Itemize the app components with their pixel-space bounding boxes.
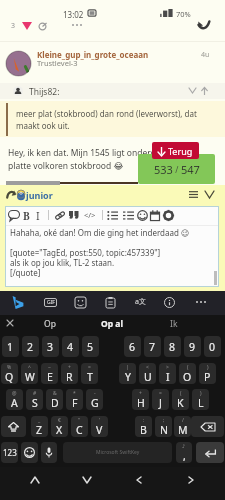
button[interactable]: Clipboard [106, 297, 115, 308]
button[interactable]: 8 [164, 336, 181, 357]
staticText: 13:02 [63, 9, 84, 20]
button[interactable]: 2 [22, 336, 39, 357]
button[interactable]: % [1, 363, 18, 384]
button[interactable]: : [135, 416, 152, 437]
staticText: 9 [189, 340, 196, 354]
staticText: Thijs82: [29, 86, 60, 98]
button[interactable]: 123 [1, 442, 18, 463]
staticText: ♪ [182, 443, 186, 449]
staticText: X [56, 423, 63, 437]
button[interactable]: Numbered list [123, 211, 134, 220]
button[interactable]: Bing search [12, 296, 24, 309]
button[interactable]: Shift [1, 416, 26, 437]
staticText: meer plat (stokbrood) dan rond (leverwor… [16, 108, 216, 132]
staticText: </> [84, 210, 96, 220]
button[interactable]: = [81, 363, 98, 384]
button[interactable]: ' [91, 416, 108, 437]
button[interactable]: Emoji [21, 442, 38, 463]
button[interactable]: / [174, 416, 191, 437]
button[interactable]: " [71, 416, 88, 437]
button[interactable]: 1 [2, 336, 19, 357]
button[interactable]: Translate [134, 296, 146, 308]
button[interactable]: Enter [196, 442, 224, 463]
button[interactable]: Comment [8, 210, 20, 221]
button[interactable]: </> [84, 210, 96, 220]
button[interactable]: ( [179, 363, 196, 384]
button[interactable]: & [46, 389, 63, 410]
staticText: Kleine_gup_in_grote_oceaan [37, 49, 149, 60]
button[interactable]: + [132, 389, 149, 410]
button[interactable]: + [61, 363, 78, 384]
button[interactable]: Terug [152, 142, 199, 159]
button[interactable]: 6 [124, 336, 141, 357]
button[interactable]: Voice input [41, 442, 57, 463]
staticText: E [47, 370, 53, 384]
button[interactable]: 4 [62, 336, 79, 357]
button[interactable]: ) [199, 363, 216, 384]
staticText: C [76, 423, 83, 437]
button[interactable]: * [66, 389, 83, 410]
button[interactable]: @ [6, 389, 23, 410]
button[interactable]: 3 [42, 336, 59, 357]
button[interactable]: ^ [21, 363, 38, 384]
button[interactable]: Op al [86, 318, 138, 330]
button[interactable]: | [119, 363, 136, 384]
button[interactable]: # [26, 389, 43, 410]
button[interactable]: 5 [82, 336, 99, 357]
button[interactable]: Ik [148, 318, 200, 330]
button[interactable]: Backspace [191, 416, 224, 437]
button[interactable]: Microsoft SwiftKey [63, 442, 172, 463]
staticText: ' [99, 417, 101, 424]
button[interactable]: Emoji [137, 210, 148, 221]
button[interactable]: Forward [174, 470, 208, 490]
button[interactable]: Settings [163, 210, 174, 221]
staticText: Microsoft SwiftKey [96, 449, 140, 456]
button[interactable]: Op [24, 318, 76, 330]
button[interactable]: GIF [44, 298, 57, 307]
button[interactable]: Close suggestions [7, 320, 13, 326]
button[interactable]: ♪ [176, 442, 192, 463]
button[interactable]: Scroll up [18, 470, 52, 490]
button[interactable]: _ [31, 416, 48, 437]
staticText: € [58, 417, 61, 424]
staticText: U [144, 370, 152, 384]
button[interactable]: ~ [41, 363, 58, 384]
button[interactable]: Bullet list [107, 211, 118, 220]
staticText: B [140, 423, 147, 437]
staticText: R [66, 370, 73, 384]
button[interactable]: Back [122, 470, 156, 490]
staticText: " [78, 417, 81, 424]
button[interactable]: 7 [144, 336, 161, 357]
button[interactable]: - [86, 389, 103, 410]
staticText: ) [207, 364, 209, 371]
button[interactable]: = [152, 389, 169, 410]
staticText: T [87, 370, 93, 384]
staticText: B [23, 209, 30, 223]
button[interactable]: More options [196, 301, 206, 303]
button[interactable]: 0 [204, 336, 221, 357]
staticText: | [126, 364, 129, 371]
staticText: Hey, ik ken dat. Mijn 1545 ligt onderop,… [8, 147, 188, 172]
staticText: Op [44, 318, 56, 330]
staticText: % [7, 364, 12, 371]
button[interactable]: € [51, 416, 68, 437]
button[interactable]: I [36, 209, 40, 223]
button[interactable]: Scroll down [70, 470, 104, 490]
button[interactable]: Stickers [75, 297, 86, 308]
button[interactable]: Calendar [150, 210, 160, 221]
button[interactable]: ) [192, 389, 209, 410]
button[interactable]: > [159, 363, 176, 384]
button[interactable]: B [23, 209, 30, 223]
staticText: Hahaha, oké dan! Om die ging het inderda… [10, 227, 190, 278]
button[interactable]: Info [164, 297, 175, 308]
button[interactable]: ( [172, 389, 189, 410]
button[interactable]: 9 [184, 336, 201, 357]
button[interactable]: Link [55, 211, 65, 220]
button[interactable]: 533 [138, 154, 215, 184]
button[interactable]: ; [155, 416, 172, 437]
button[interactable]: Quote [69, 211, 79, 219]
button[interactable]: < [139, 363, 156, 384]
staticText: F [72, 396, 78, 410]
staticText: J [159, 396, 162, 410]
staticText: ( [180, 390, 182, 397]
